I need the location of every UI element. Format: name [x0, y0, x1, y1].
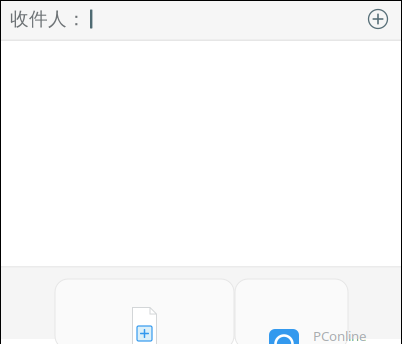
button[interactable]: Attach document	[55, 279, 234, 344]
staticText: 收件人：	[10, 7, 86, 30]
button[interactable]: Add recipient	[365, 6, 391, 32]
staticText: PConline	[313, 327, 367, 344]
button[interactable]: Attach item	[235, 279, 348, 344]
